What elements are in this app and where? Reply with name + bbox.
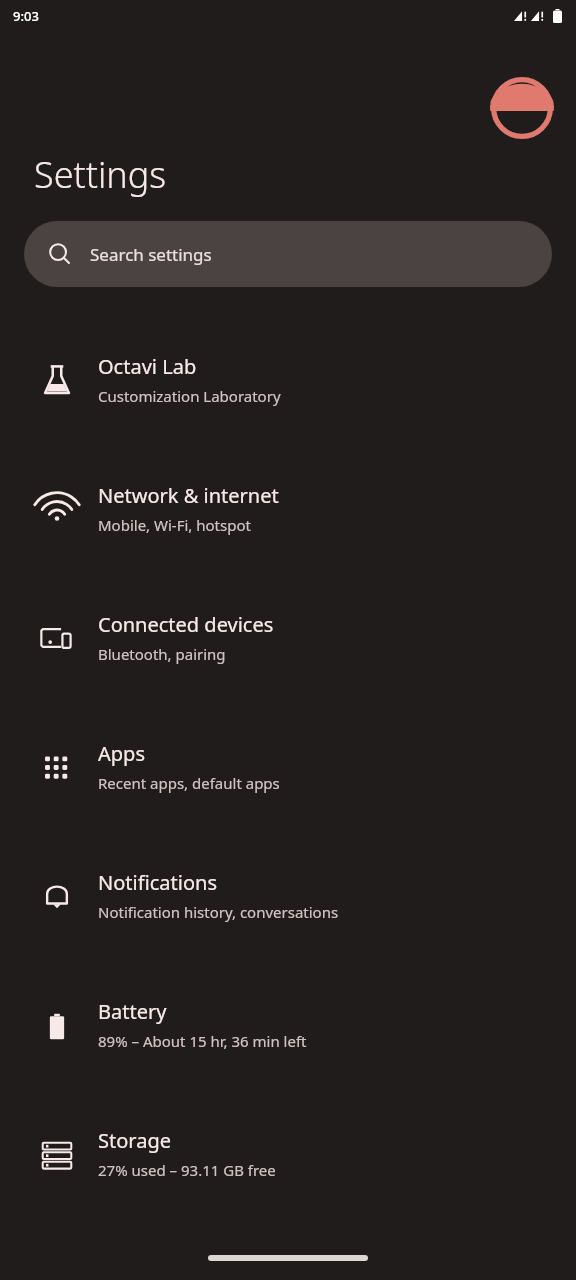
button[interactable]: Storage xyxy=(0,1089,576,1218)
button[interactable]: Connected devices xyxy=(0,573,576,702)
staticText: Connected devices xyxy=(98,611,274,638)
button[interactable]: Apps xyxy=(0,702,576,831)
staticText: Notifications xyxy=(98,869,217,896)
staticText: Search settings xyxy=(90,243,212,266)
staticText: 9:03 xyxy=(13,7,39,25)
staticText: Settings xyxy=(34,150,167,199)
staticText: Octavi Lab xyxy=(98,353,197,380)
button[interactable]: Network & internet xyxy=(0,444,576,573)
staticText: Notification history, conversations xyxy=(98,902,339,922)
button[interactable]: Battery xyxy=(0,960,576,1089)
staticText: 27% used – 93.11 GB free xyxy=(98,1160,276,1180)
button[interactable]: Notifications xyxy=(0,831,576,960)
staticText: Storage xyxy=(98,1127,171,1154)
staticText: Battery xyxy=(98,998,167,1025)
staticText: Network & internet xyxy=(98,482,279,509)
button[interactable]: Account xyxy=(490,76,554,140)
staticText: Recent apps, default apps xyxy=(98,773,280,793)
staticText: 89% – About 15 hr, 36 min left xyxy=(98,1031,307,1051)
staticText: Mobile, Wi-Fi, hotspot xyxy=(98,515,251,535)
button[interactable]: Search settings xyxy=(24,221,552,287)
staticText: Apps xyxy=(98,740,145,767)
button[interactable]: Octavi Lab xyxy=(0,315,576,444)
staticText: Customization Laboratory xyxy=(98,386,281,406)
staticText: Bluetooth, pairing xyxy=(98,644,226,664)
